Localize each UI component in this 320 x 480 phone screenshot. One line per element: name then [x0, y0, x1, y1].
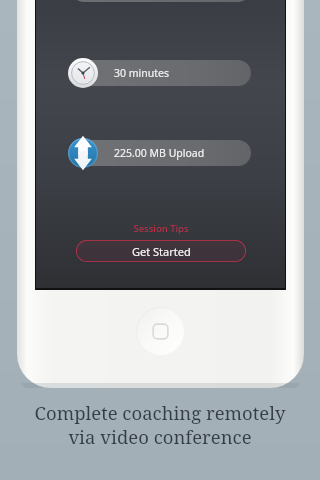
button[interactable]: Home [136, 307, 185, 356]
staticText: 225.00 MB Upload [114, 146, 205, 160]
button[interactable] [71, 0, 251, 2]
button[interactable]: Session Tips [133, 222, 189, 235]
button[interactable]: 30 minutes [71, 60, 251, 86]
button[interactable]: 225.00 MB Upload [71, 140, 251, 166]
button[interactable]: Duration [68, 58, 98, 88]
staticText: Get Started [132, 244, 191, 259]
staticText: Complete coaching remotely via video con… [0, 400, 320, 449]
button[interactable]: Get Started [76, 240, 246, 262]
button[interactable]: Upload size [68, 138, 98, 168]
staticText: 30 minutes [114, 66, 169, 80]
